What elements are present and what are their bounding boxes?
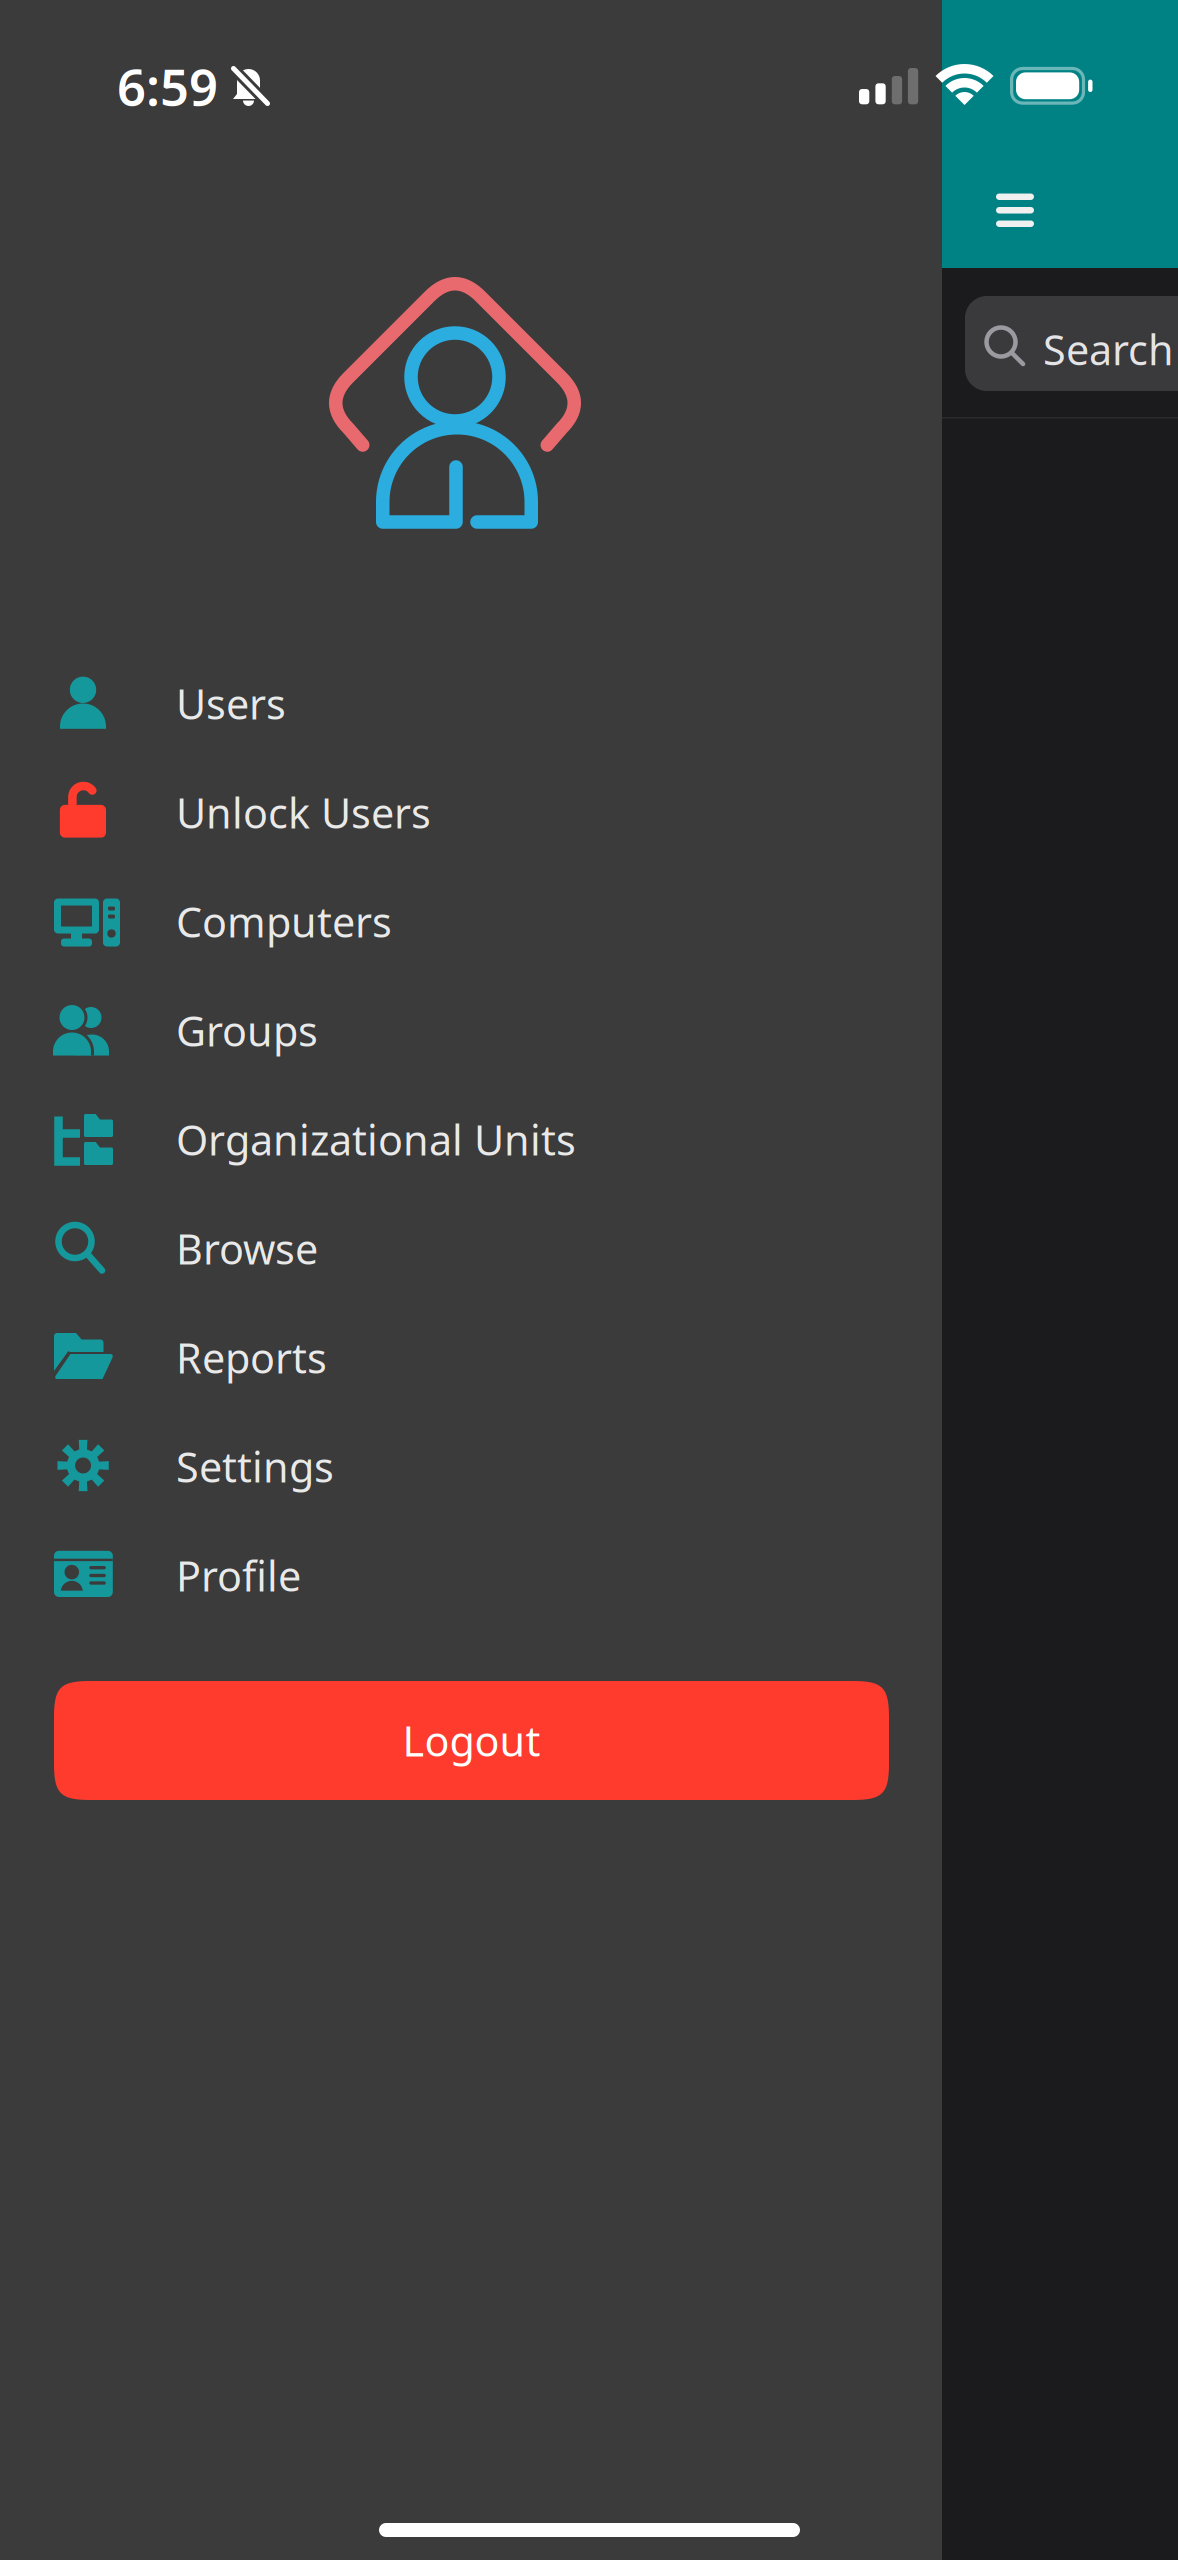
button[interactable]: Groups [0,976,942,1085]
staticText: Logout [402,1712,540,1769]
button[interactable]: Users [0,649,942,758]
button[interactable]: Settings [0,1412,942,1521]
staticText: Computers [176,893,392,950]
button[interactable]: Reports [0,1303,942,1412]
button[interactable]: Computers [0,867,942,976]
staticText: Groups [176,1002,318,1059]
button[interactable]: Unlock Users [0,758,942,867]
staticText: Users [176,675,286,732]
staticText: Reports [176,1329,327,1386]
button[interactable]: Search [965,296,1178,391]
staticText: Unlock Users [176,784,431,841]
staticText: Profile [176,1547,301,1604]
staticText: Settings [176,1438,334,1495]
button[interactable]: Menu [990,190,1040,230]
button[interactable]: Logout [54,1681,889,1800]
button[interactable]: Organizational Units [0,1085,942,1194]
button[interactable]: Browse [0,1194,942,1303]
button[interactable]: Profile [0,1521,942,1630]
staticText: Browse [176,1220,318,1277]
staticText: Search [1043,321,1174,377]
staticText: Organizational Units [176,1111,576,1168]
staticText: 6:59 [117,51,218,120]
